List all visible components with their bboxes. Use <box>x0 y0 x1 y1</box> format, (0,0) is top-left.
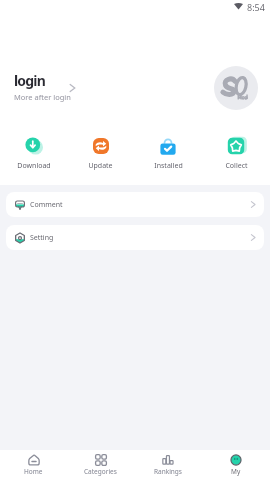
staticText: Setting <box>30 233 54 243</box>
button[interactable]: Comment <box>6 192 264 217</box>
button[interactable]: Home <box>0 450 67 480</box>
button[interactable]: Download <box>0 136 67 171</box>
staticText: login <box>14 71 46 90</box>
button[interactable]: My <box>202 450 270 480</box>
staticText: Update <box>88 161 113 171</box>
staticText: Comment <box>30 200 63 210</box>
button[interactable]: Categories <box>67 450 134 480</box>
button[interactable]: Rankings <box>134 450 202 480</box>
button[interactable]: Collect <box>202 136 270 171</box>
staticText: My <box>231 467 241 476</box>
button[interactable]: Update <box>67 136 134 171</box>
staticText: Home <box>24 467 43 476</box>
staticText: 8:54 <box>247 1 265 13</box>
staticText: Installed <box>154 161 183 171</box>
button[interactable]: login <box>14 71 84 102</box>
button[interactable]: Setting <box>6 225 264 250</box>
staticText: More after login <box>14 92 71 102</box>
button[interactable]: Profile avatar <box>214 66 258 110</box>
staticText: Download <box>17 161 51 171</box>
staticText: Categories <box>84 467 117 476</box>
staticText: Rankings <box>154 467 182 476</box>
button[interactable]: Installed <box>134 136 202 171</box>
staticText: Collect <box>225 161 248 171</box>
